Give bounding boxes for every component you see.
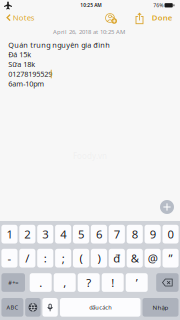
button[interactable]: 6: [91, 225, 107, 243]
staticText: 1: [6, 226, 12, 242]
staticText: -: [7, 250, 11, 266]
staticText: @: [148, 250, 158, 266]
button[interactable]: đ: [109, 249, 125, 267]
staticText: Quán trung nguyên gia đình: [8, 40, 110, 50]
staticText: 9: [150, 226, 156, 242]
button[interactable]: ?: [78, 273, 100, 292]
staticText: 6: [96, 226, 102, 242]
button[interactable]: dấu cách: [60, 298, 140, 317]
staticText: !: [111, 275, 114, 290]
button[interactable]: Delete: [156, 273, 179, 292]
staticText: đ: [113, 250, 120, 266]
button[interactable]: Next keyboard: [25, 298, 41, 317]
button[interactable]: ,: [54, 273, 76, 292]
button[interactable]: .: [30, 273, 52, 292]
staticText: ): [97, 250, 100, 266]
staticText: :: [44, 250, 47, 266]
staticText: 7: [114, 226, 120, 242]
staticText: 01278195529: [8, 69, 52, 79]
staticText: /: [25, 250, 29, 266]
staticText: #+=: [8, 279, 18, 286]
button[interactable]: /: [19, 249, 35, 267]
button[interactable]: 0: [162, 225, 179, 243]
button[interactable]: Nhập: [142, 298, 178, 317]
button[interactable]: ”: [162, 249, 179, 267]
staticText: ABC: [6, 303, 18, 311]
button[interactable]: #+=: [1, 273, 25, 292]
staticText: April 26, 2018 at 10:25 AM: [53, 28, 125, 36]
staticText: ,: [63, 275, 66, 290]
staticText: 3: [42, 226, 48, 242]
staticText: dấu cách: [89, 303, 111, 311]
staticText: 6am-10pm: [8, 79, 44, 88]
staticText: Notes: [13, 12, 35, 23]
button[interactable]: 4: [55, 225, 71, 243]
button[interactable]: (: [73, 249, 89, 267]
staticText: Sữa 18k: [8, 59, 35, 69]
button[interactable]: 1: [1, 225, 17, 243]
staticText: &: [131, 250, 139, 266]
button[interactable]: &: [127, 249, 143, 267]
button[interactable]: Dictation: [42, 298, 58, 317]
button[interactable]: 3: [37, 225, 53, 243]
button[interactable]: Add People: [100, 9, 120, 27]
button[interactable]: ABC: [1, 298, 23, 317]
staticText: 8: [132, 226, 138, 242]
staticText: 2: [24, 226, 30, 242]
button[interactable]: 9: [145, 225, 161, 243]
staticText: ?: [86, 275, 91, 290]
staticText: Nhập: [152, 303, 168, 312]
staticText: ;: [62, 250, 65, 266]
staticText: 76%: [153, 2, 163, 9]
button[interactable]: :: [37, 249, 53, 267]
button[interactable]: 2: [19, 225, 35, 243]
staticText: 0: [168, 226, 174, 242]
staticText: ”: [169, 250, 173, 266]
staticText: .: [39, 275, 42, 290]
staticText: 4: [60, 226, 66, 242]
staticText: Done: [152, 12, 173, 23]
staticText: ’: [136, 275, 138, 290]
button[interactable]: 8: [127, 225, 143, 243]
staticText: Đá 15k: [8, 49, 31, 59]
button[interactable]: @: [145, 249, 161, 267]
staticText: 5: [78, 226, 84, 242]
button[interactable]: Share: [129, 9, 149, 27]
button[interactable]: -: [1, 249, 17, 267]
button[interactable]: Add attachment: [160, 200, 174, 214]
button[interactable]: 5: [73, 225, 89, 243]
button[interactable]: Done: [148, 7, 177, 28]
button[interactable]: !: [102, 273, 124, 292]
button[interactable]: 7: [109, 225, 125, 243]
button[interactable]: Notes: [3, 7, 38, 28]
button[interactable]: ’: [126, 273, 148, 292]
button[interactable]: ;: [55, 249, 71, 267]
staticText: 10:25 AM: [80, 2, 101, 8]
button[interactable]: ): [91, 249, 107, 267]
staticText: (: [80, 250, 83, 266]
